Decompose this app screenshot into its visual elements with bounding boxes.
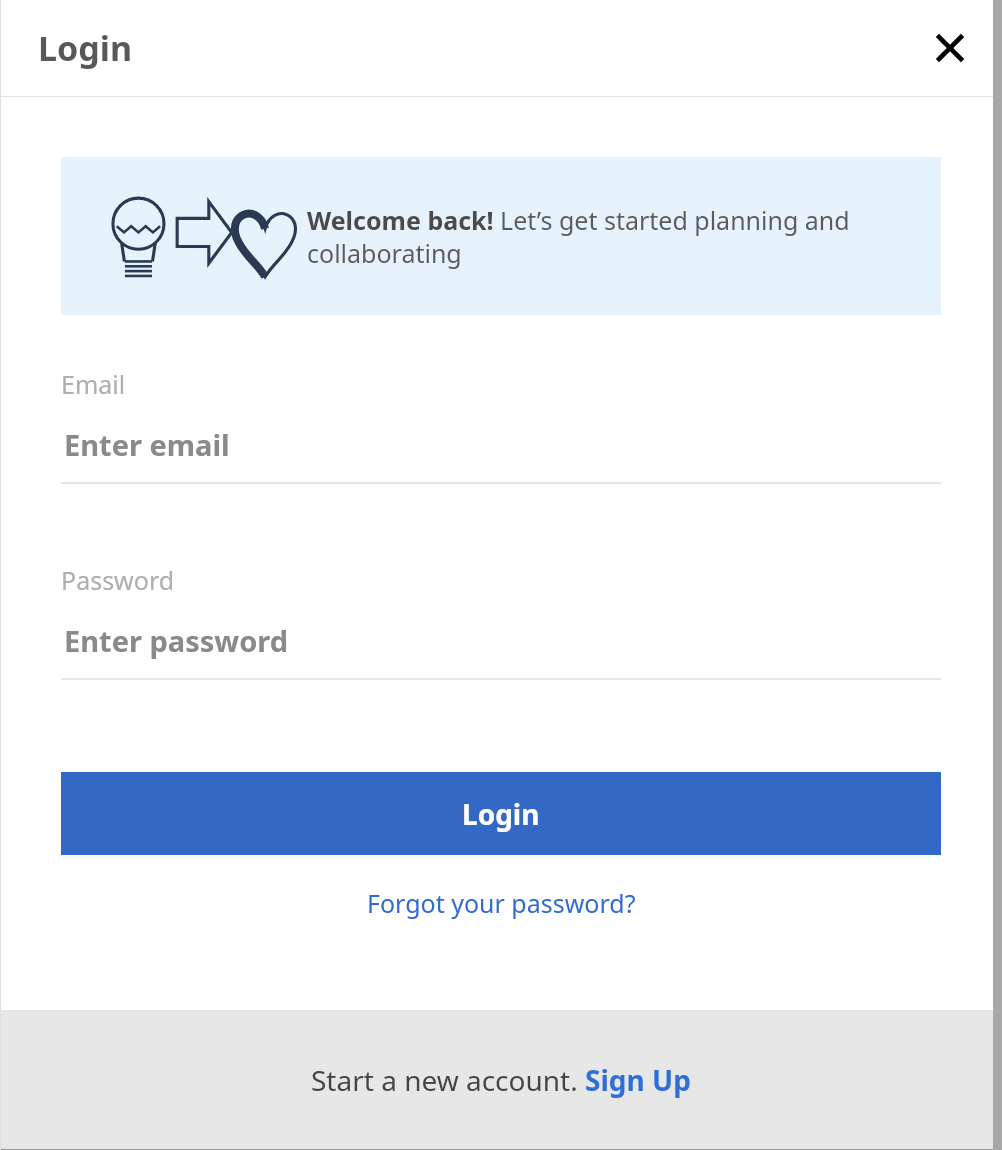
button[interactable]: Login [61, 772, 941, 855]
staticText: Login [462, 795, 540, 833]
staticText: Enter email [64, 425, 230, 464]
staticText: Sign Up [585, 1061, 691, 1099]
staticText: Email [61, 367, 126, 401]
button[interactable]: Password [61, 563, 941, 680]
staticText: Welcome back! Let’s get started planning… [307, 203, 915, 270]
button[interactable]: Email [61, 367, 941, 484]
staticText: Forgot your password? [367, 886, 636, 920]
staticText: Enter password [64, 621, 288, 660]
staticText: Start a new account. [311, 1061, 585, 1099]
button[interactable]: Sign Up [585, 1061, 691, 1099]
staticText: Login [38, 25, 133, 71]
staticText: Password [61, 563, 175, 597]
button[interactable]: Forgot your password? [61, 886, 941, 920]
button[interactable]: Close [928, 26, 972, 70]
